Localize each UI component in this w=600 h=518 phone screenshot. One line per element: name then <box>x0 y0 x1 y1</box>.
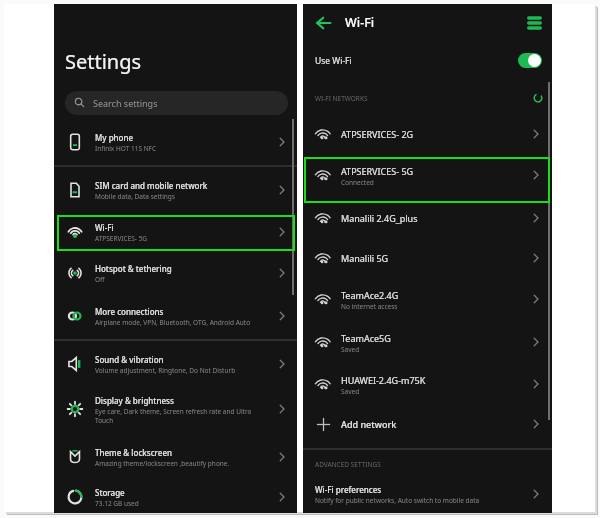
staticText: No internet access <box>341 302 398 311</box>
button[interactable]: Sound & vibration <box>54 343 297 385</box>
staticText: Manalili 2.4G_plus <box>341 212 418 224</box>
staticText: Display & brightness <box>95 395 174 406</box>
staticText: Theme & lockscreen <box>95 447 173 458</box>
staticText: Saved <box>341 345 360 354</box>
staticText: Eye care, Dark theme, Screen refresh rat… <box>95 407 253 425</box>
staticText: TeamAce5G <box>341 332 391 344</box>
staticText: HUAWEI-2.4G-m75K <box>341 374 426 386</box>
button[interactable]: Theme & lockscreen <box>54 436 297 478</box>
button[interactable]: Display & brightness <box>54 388 297 430</box>
staticText: Sound & vibration <box>95 354 164 365</box>
staticText: Airplane mode, VPN, Bluetooth, OTG, Andr… <box>95 318 251 327</box>
button[interactable]: More options <box>524 12 545 33</box>
button[interactable]: Wi-Fi preferences <box>303 473 552 513</box>
staticText: SIM card and mobile network <box>95 180 208 191</box>
button[interactable]: TeamAce2.4G <box>303 278 552 320</box>
button[interactable]: HUAWEI-2.4G-m75K <box>303 363 552 405</box>
button[interactable]: Back <box>312 12 334 34</box>
staticText: Hotspot & tethering <box>95 263 172 274</box>
staticText: WI-FI NETWORKS <box>315 94 368 103</box>
button[interactable]: ATPSERVICES- 2G <box>303 113 552 155</box>
staticText: Mobile data, Data settings <box>95 192 175 201</box>
staticText: Manalili 5G <box>341 252 389 264</box>
staticText: 73.12 GB used <box>95 499 139 508</box>
staticText: Wi-Fi preferences <box>315 484 382 495</box>
button[interactable]: Search settings <box>65 91 288 115</box>
staticText: Add network <box>341 418 397 430</box>
staticText: Wi-Fi <box>345 14 375 31</box>
staticText: Infinix HOT 11S NFC <box>95 144 157 153</box>
staticText: Saved <box>341 387 360 396</box>
staticText: ADVANCED SETTINGS <box>315 460 381 469</box>
button[interactable]: Add network <box>303 403 552 445</box>
button[interactable]: Hotspot & tethering <box>54 252 297 294</box>
staticText: Volume adjustment, Ringtone, Do Not Dist… <box>95 366 236 375</box>
staticText: Search settings <box>93 97 158 109</box>
button[interactable]: Manalili 2.4G_plus <box>303 197 552 239</box>
button[interactable]: Storage <box>54 476 297 513</box>
button[interactable]: Wi-Fi <box>54 211 297 253</box>
staticText: Use Wi-Fi <box>315 55 352 67</box>
staticText: My phone <box>95 132 134 143</box>
staticText: More connections <box>95 306 164 317</box>
staticText: ATPSERVICES- 5G <box>95 234 148 243</box>
button[interactable]: TeamAce5G <box>303 321 552 363</box>
button[interactable]: SIM card and mobile network <box>54 169 297 211</box>
staticText: Settings <box>65 48 142 75</box>
button[interactable]: ATPSERVICES- 5G <box>303 154 552 196</box>
button[interactable]: More connections <box>54 295 297 337</box>
staticText: Storage <box>95 487 125 498</box>
staticText: ATPSERVICES- 5G <box>341 165 414 177</box>
staticText: Notify for public networks, Auto switch … <box>315 496 480 505</box>
staticText: TeamAce2.4G <box>341 289 399 301</box>
button[interactable]: Use Wi-Fi <box>303 45 552 76</box>
staticText: Off <box>95 275 105 284</box>
staticText: ATPSERVICES- 2G <box>341 128 414 140</box>
button[interactable]: Manalili 5G <box>303 237 552 279</box>
staticText: Amazing theme/lockscreen ,beautify phone… <box>95 459 230 468</box>
staticText: Connected <box>341 178 374 187</box>
button[interactable]: My phone <box>54 121 297 163</box>
staticText: Wi-Fi <box>95 222 114 233</box>
